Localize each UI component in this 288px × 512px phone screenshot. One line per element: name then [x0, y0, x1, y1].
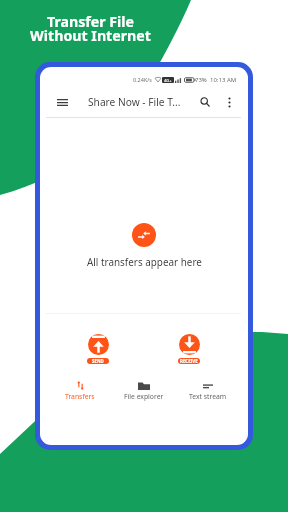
staticText: SEND	[92, 358, 104, 364]
staticText: RECEIVE	[180, 358, 198, 364]
staticText: All transfers appear here	[87, 255, 202, 268]
staticText: 4G+	[164, 78, 172, 83]
button[interactable]: Text stream	[176, 381, 240, 401]
button[interactable]: Transfer	[132, 223, 156, 247]
staticText: 0.24K/s	[133, 76, 152, 83]
button[interactable]: File explorer	[112, 381, 176, 401]
button[interactable]: SEND	[87, 334, 109, 364]
staticText: Transfer File Without Internet	[30, 12, 151, 45]
staticText: 73%	[195, 76, 207, 84]
staticText: 10:13 AM	[210, 76, 237, 84]
staticText: File explorer	[124, 392, 164, 401]
button[interactable]: More options	[218, 90, 240, 114]
button[interactable]: Search	[194, 90, 216, 114]
staticText: Text stream	[189, 392, 227, 401]
staticText: Share Now - File T...	[88, 95, 181, 109]
button[interactable]: RECEIVE	[178, 334, 200, 364]
button[interactable]: Transfers	[48, 381, 112, 401]
staticText: Transfers	[65, 392, 95, 401]
button[interactable]: Open navigation menu	[52, 90, 73, 114]
